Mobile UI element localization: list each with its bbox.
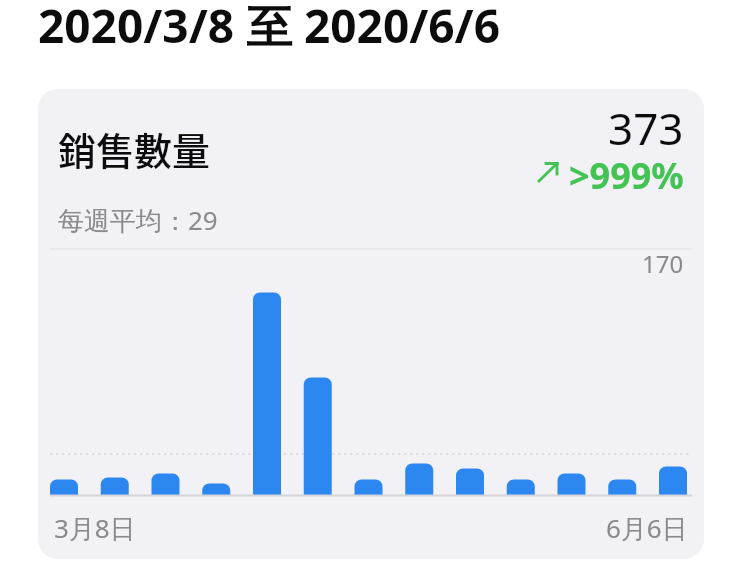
button[interactable]: 銷售數量: [38, 89, 704, 559]
staticText: >999%: [569, 151, 684, 200]
staticText: 銷售數量: [58, 121, 211, 176]
staticText: 2020/3/8 至 2020/6/6: [38, 0, 501, 57]
staticText: 170: [642, 247, 684, 280]
staticText: 每週平均：29: [58, 202, 218, 238]
staticText: 373: [608, 98, 684, 158]
staticText: 6月6日: [606, 510, 688, 546]
staticText: 3月8日: [54, 510, 136, 546]
